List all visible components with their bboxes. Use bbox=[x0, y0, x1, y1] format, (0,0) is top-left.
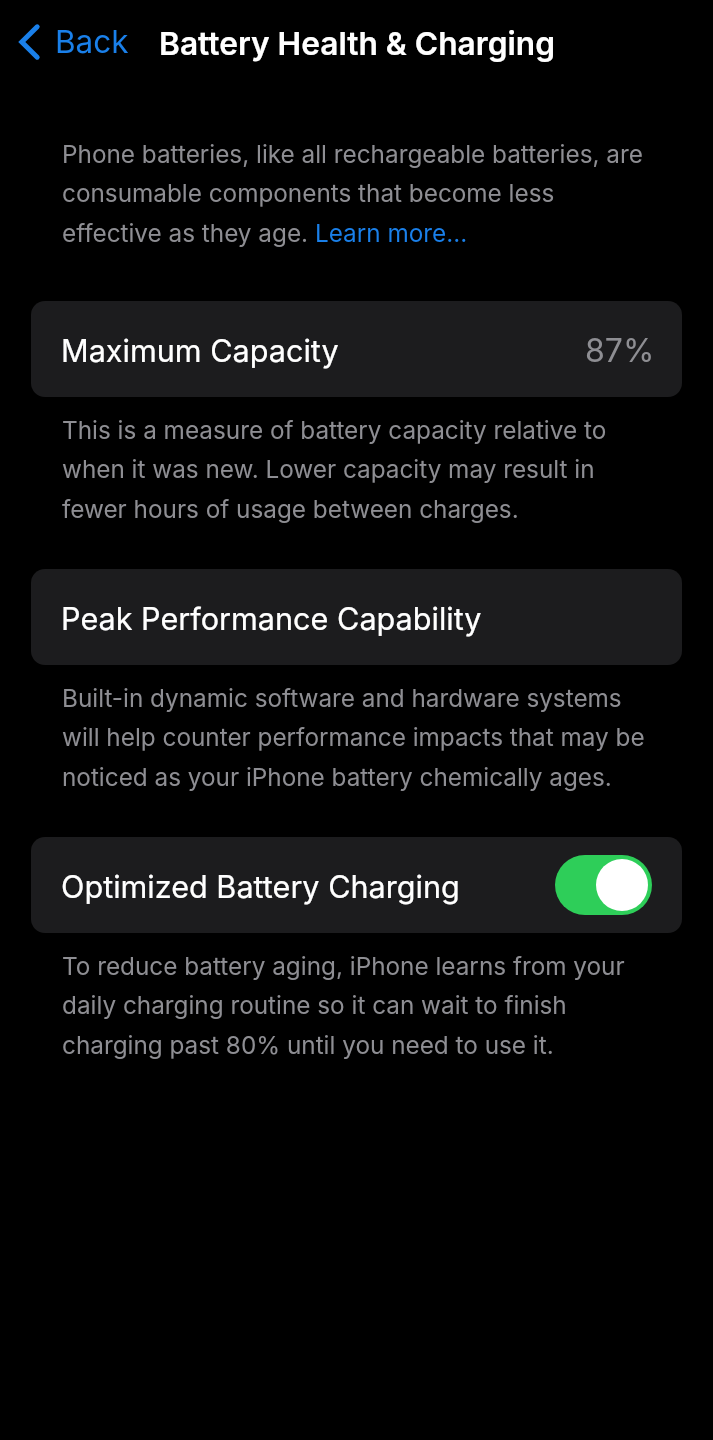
staticText: To reduce battery aging, iPhone learns f… bbox=[62, 951, 652, 1060]
staticText: Battery Health & Charging bbox=[159, 24, 555, 62]
staticText: This is a measure of battery capacity re… bbox=[62, 415, 652, 524]
button[interactable]: Maximum Capacity bbox=[31, 301, 682, 397]
staticText: Peak Performance Capability bbox=[61, 600, 482, 637]
staticText: Back bbox=[55, 22, 129, 60]
staticText: Phone batteries, like all rechargeable b… bbox=[62, 139, 652, 248]
button[interactable]: Optimized Battery Charging toggle, on bbox=[555, 855, 652, 915]
button[interactable]: Back bbox=[13, 15, 135, 69]
staticText: Maximum Capacity bbox=[61, 332, 339, 369]
staticText: 87% bbox=[585, 331, 655, 370]
button[interactable]: Peak Performance Capability bbox=[31, 569, 682, 665]
button[interactable]: Optimized Battery Charging bbox=[31, 837, 682, 933]
staticText: Built-in dynamic software and hardware s… bbox=[62, 683, 652, 792]
staticText: Optimized Battery Charging bbox=[61, 868, 460, 905]
